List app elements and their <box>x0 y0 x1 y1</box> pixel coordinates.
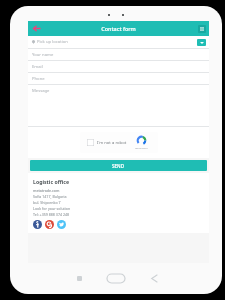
staticText: reCAPTCHA <box>135 146 148 149</box>
staticText: bul. Shipcenko 7 <box>33 200 61 205</box>
button[interactable]: SEND <box>30 160 207 171</box>
button[interactable]: Home <box>102 269 130 287</box>
button[interactable]: Back <box>31 23 42 34</box>
staticText: Logistic office <box>33 178 69 185</box>
staticText: Look for your solution <box>33 206 71 211</box>
staticText: Phone <box>32 76 45 82</box>
staticText: Contact form <box>101 25 136 32</box>
button[interactable]: Recent apps <box>68 268 90 288</box>
button[interactable]: Back <box>142 268 164 288</box>
staticText: SEND <box>112 163 125 169</box>
button[interactable]: I'm not a robot <box>80 132 158 153</box>
button[interactable]: Facebook <box>33 220 42 229</box>
button[interactable]: Open location list <box>197 39 206 46</box>
staticText: Tel: +359 888 374 248 <box>33 212 70 217</box>
staticText: Pick up location <box>37 39 68 45</box>
button[interactable]: Phone <box>28 73 209 84</box>
staticText: I'm not a robot <box>97 140 127 146</box>
staticText: metatrade.com <box>33 188 60 193</box>
button[interactable]: Menu <box>198 25 206 33</box>
button[interactable]: Pick up location <box>28 36 209 48</box>
staticText: Message <box>32 88 50 94</box>
staticText: Email <box>32 64 43 70</box>
button[interactable]: Email <box>28 61 209 72</box>
button[interactable]: Google Plus <box>45 220 54 229</box>
staticText: Sofia 1417, Bulgaria <box>33 194 67 199</box>
staticText: Your name <box>32 52 54 58</box>
button[interactable]: Twitter <box>57 220 66 229</box>
button[interactable]: Your name <box>28 49 209 60</box>
